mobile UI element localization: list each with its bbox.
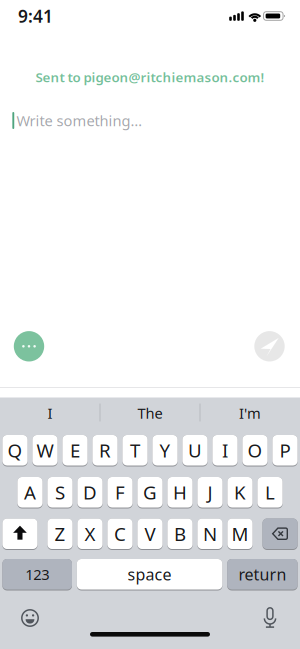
button[interactable]: Q xyxy=(2,435,28,466)
button[interactable]: N xyxy=(197,518,223,550)
button[interactable]: V xyxy=(137,518,163,550)
button[interactable]: space xyxy=(77,559,222,590)
button[interactable]: D xyxy=(77,477,103,508)
button[interactable]: 123 xyxy=(2,559,72,590)
button[interactable]: P xyxy=(272,435,298,466)
staticText: Z xyxy=(54,521,65,546)
button[interactable]: Z xyxy=(47,518,73,550)
button[interactable] xyxy=(262,518,298,550)
button[interactable]: T xyxy=(122,435,148,466)
staticText: H xyxy=(173,480,187,505)
button[interactable]: F xyxy=(107,477,133,508)
staticText: B xyxy=(174,521,186,546)
staticText: I'm xyxy=(239,403,261,423)
staticText: M xyxy=(231,521,248,546)
button[interactable]: J xyxy=(197,477,223,508)
staticText: L xyxy=(265,480,275,505)
staticText: N xyxy=(203,521,217,546)
staticText: 123 xyxy=(25,564,49,584)
button[interactable]: E xyxy=(62,435,88,466)
button[interactable]: R xyxy=(92,435,118,466)
button[interactable]: U xyxy=(182,435,208,466)
button[interactable]: C xyxy=(107,518,133,550)
button[interactable]: X xyxy=(77,518,103,550)
button[interactable] xyxy=(254,331,285,361)
staticText: I xyxy=(222,438,228,463)
button[interactable]: K xyxy=(227,477,253,508)
staticText: T xyxy=(130,438,140,463)
button[interactable]: Y xyxy=(152,435,178,466)
staticText: Write something… xyxy=(16,111,142,130)
staticText: K xyxy=(234,480,246,505)
staticText: C xyxy=(114,521,126,546)
staticText: G xyxy=(143,480,157,505)
staticText: V xyxy=(144,521,155,546)
staticText: W xyxy=(36,438,53,463)
button[interactable]: S xyxy=(47,477,73,508)
button[interactable] xyxy=(2,518,37,550)
staticText: I xyxy=(47,403,52,423)
staticText: J xyxy=(207,480,212,505)
staticText: P xyxy=(279,438,290,463)
staticText: U xyxy=(188,438,202,463)
button[interactable] xyxy=(260,607,280,628)
staticText: return xyxy=(238,564,286,585)
button[interactable]: O xyxy=(242,435,268,466)
button[interactable]: B xyxy=(167,518,193,550)
staticText: R xyxy=(99,438,111,463)
staticText: E xyxy=(70,438,80,463)
button[interactable]: G xyxy=(137,477,163,508)
staticText: A xyxy=(24,480,36,505)
staticText: O xyxy=(247,438,262,463)
staticText: X xyxy=(84,521,95,546)
button[interactable]: The xyxy=(102,396,198,430)
button[interactable]: W xyxy=(32,435,58,466)
button[interactable]: I'm xyxy=(202,396,298,430)
staticText: S xyxy=(55,480,65,505)
staticText: The xyxy=(137,403,162,423)
button[interactable]: A xyxy=(17,477,43,508)
button[interactable]: I xyxy=(212,435,238,466)
button[interactable]: H xyxy=(167,477,193,508)
button[interactable]: I xyxy=(2,396,98,430)
staticText: Sent to pigeon@ritchiemason.com! xyxy=(35,68,264,86)
button[interactable]: return xyxy=(227,559,298,590)
button[interactable] xyxy=(20,608,40,628)
staticText: space xyxy=(128,564,172,585)
staticText: Y xyxy=(159,438,170,463)
button[interactable]: L xyxy=(257,477,283,508)
staticText: D xyxy=(83,480,97,505)
button[interactable]: M xyxy=(227,518,253,550)
staticText: 9:41 xyxy=(18,4,53,27)
staticText: Q xyxy=(7,438,22,463)
staticText: F xyxy=(115,480,125,505)
button[interactable] xyxy=(14,331,44,361)
